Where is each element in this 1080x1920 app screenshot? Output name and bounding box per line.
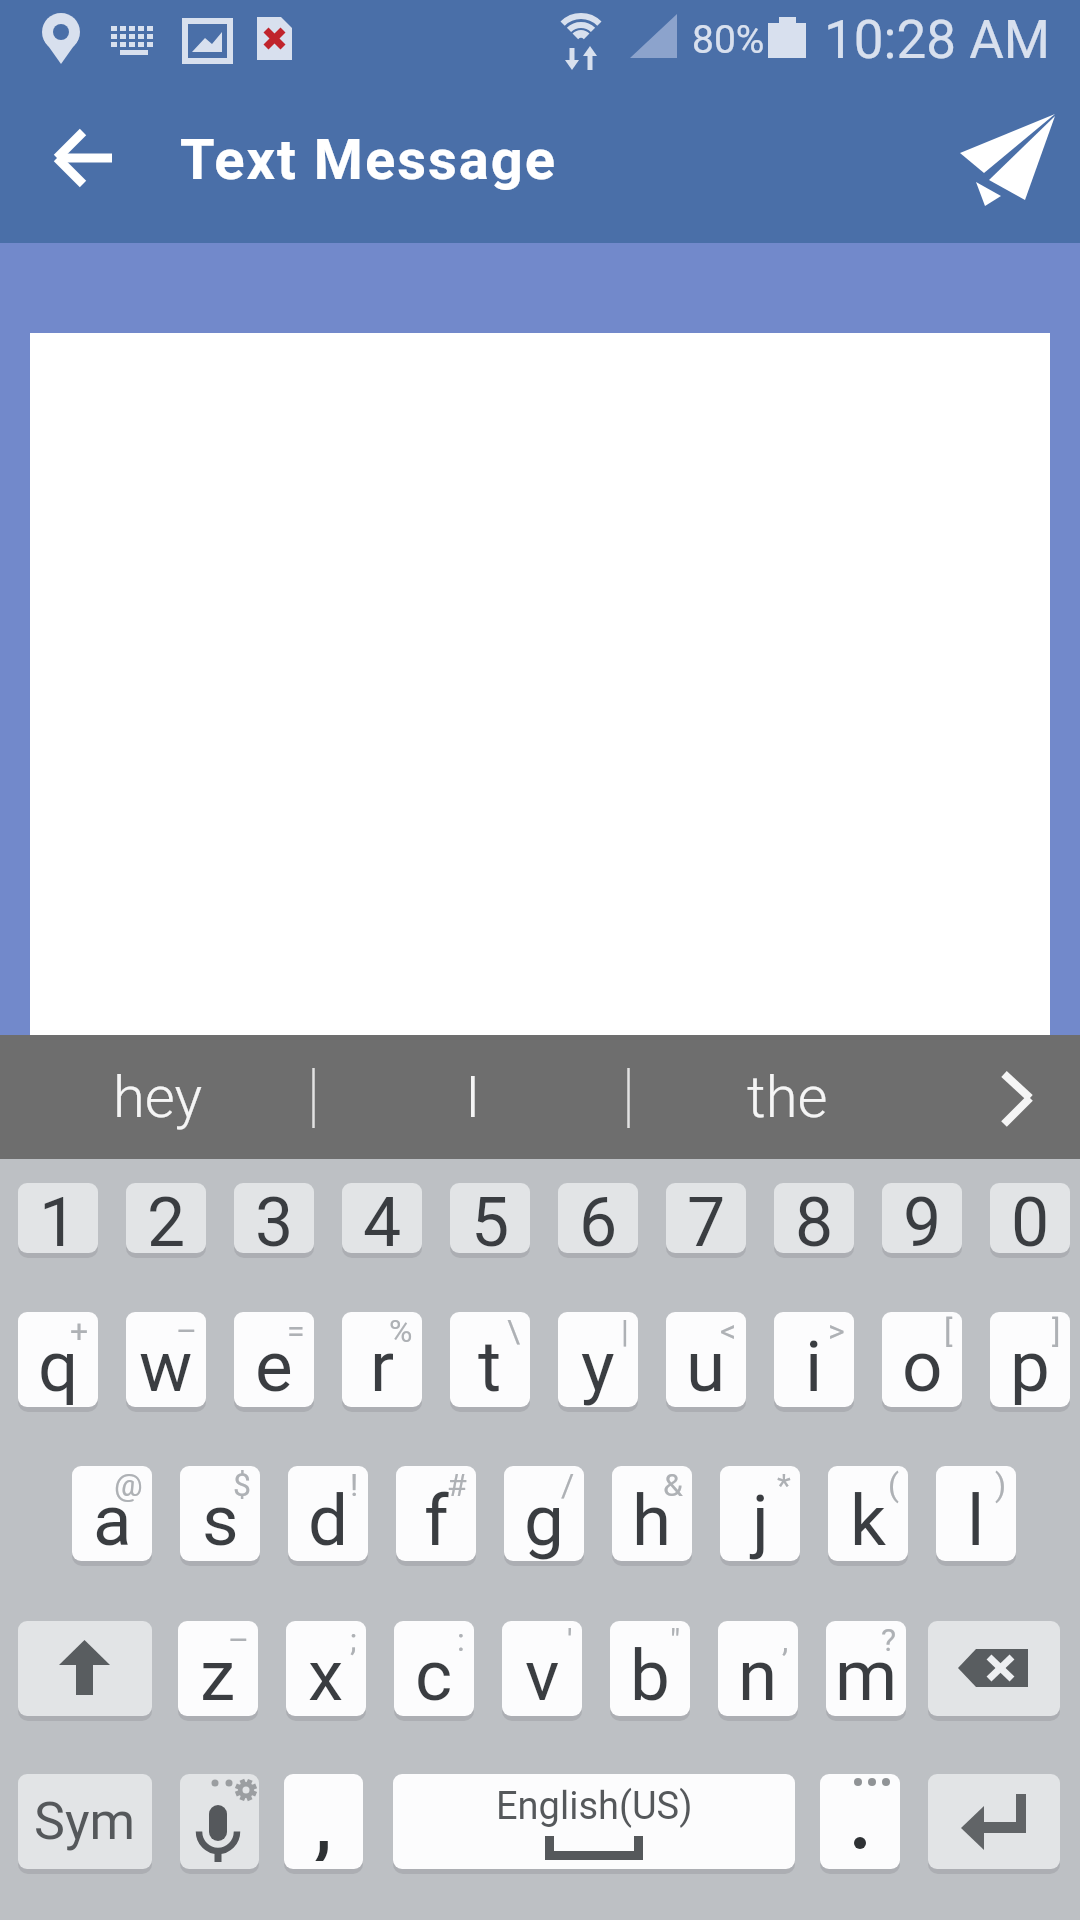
button[interactable]: 2 xyxy=(126,1183,206,1253)
button[interactable]: l xyxy=(936,1466,1016,1561)
button[interactable]: o xyxy=(882,1312,962,1407)
button[interactable]: r xyxy=(342,1312,422,1407)
button[interactable]: i xyxy=(774,1312,854,1407)
staticText: x xyxy=(308,1634,344,1717)
button[interactable]: 8 xyxy=(774,1183,854,1253)
staticText: l xyxy=(967,1479,985,1562)
staticText: : xyxy=(457,1621,465,1659)
button[interactable]: n xyxy=(718,1621,798,1716)
button[interactable]: q xyxy=(18,1312,98,1407)
staticText: 9 xyxy=(903,1183,942,1253)
button[interactable]: j xyxy=(720,1466,800,1561)
staticText: 6 xyxy=(579,1183,618,1253)
staticText: f xyxy=(424,1479,449,1562)
button[interactable]: c xyxy=(394,1621,474,1716)
button[interactable] xyxy=(928,1774,1060,1869)
staticText: # xyxy=(447,1466,467,1504)
staticText: o xyxy=(902,1325,943,1408)
button[interactable]: a xyxy=(72,1466,152,1561)
staticText: 2 xyxy=(147,1183,186,1253)
button[interactable]: 3 xyxy=(234,1183,314,1253)
button[interactable]: s xyxy=(180,1466,260,1561)
button[interactable]: m xyxy=(826,1621,906,1716)
staticText: 10:28 AM xyxy=(824,9,1050,71)
button[interactable]: u xyxy=(666,1312,746,1407)
staticText: I xyxy=(465,1063,481,1131)
staticText: j xyxy=(752,1479,769,1562)
staticText: ( xyxy=(888,1466,899,1504)
staticText: \ xyxy=(507,1312,521,1350)
button[interactable]: hey xyxy=(30,1040,285,1154)
staticText: Sym xyxy=(34,1791,136,1852)
button[interactable]: 6 xyxy=(558,1183,638,1253)
button[interactable]: 4 xyxy=(342,1183,422,1253)
staticText: ) xyxy=(995,1466,1007,1504)
button[interactable] xyxy=(945,100,1065,215)
staticText: i xyxy=(805,1325,823,1408)
button[interactable]: g xyxy=(504,1466,584,1561)
button[interactable]: b xyxy=(610,1621,690,1716)
button[interactable] xyxy=(35,115,125,205)
button[interactable]: 5 xyxy=(450,1183,530,1253)
staticText: p xyxy=(1010,1325,1050,1408)
button[interactable] xyxy=(975,1050,1065,1145)
staticText: v xyxy=(525,1634,560,1717)
button[interactable]: w xyxy=(126,1312,206,1407)
staticText: < xyxy=(720,1312,737,1350)
button[interactable]: 7 xyxy=(666,1183,746,1253)
staticText: g xyxy=(524,1479,564,1562)
staticText: ' xyxy=(567,1621,573,1659)
button[interactable]: , xyxy=(284,1774,363,1869)
staticText: k xyxy=(850,1479,886,1562)
staticText: ? xyxy=(881,1621,897,1659)
staticText: b xyxy=(630,1634,670,1717)
button[interactable]: English(US) xyxy=(393,1774,795,1869)
staticText: q xyxy=(38,1325,79,1408)
staticText: u xyxy=(686,1325,726,1408)
button[interactable] xyxy=(18,1621,152,1716)
staticText: y xyxy=(581,1325,615,1408)
staticText: ; xyxy=(350,1621,357,1659)
button[interactable] xyxy=(820,1774,900,1869)
staticText: $ xyxy=(233,1466,251,1504)
staticText: , xyxy=(782,1621,789,1659)
button[interactable]: 1 xyxy=(18,1183,98,1253)
staticText: @ xyxy=(114,1466,143,1504)
button[interactable]: v xyxy=(502,1621,582,1716)
staticText: + xyxy=(70,1312,89,1350)
button[interactable] xyxy=(180,1774,259,1869)
staticText: ! xyxy=(350,1466,359,1504)
button[interactable]: 0 xyxy=(990,1183,1070,1253)
staticText: 0 xyxy=(1011,1183,1050,1253)
staticText: " xyxy=(670,1621,681,1659)
button[interactable]: Sym xyxy=(18,1774,152,1869)
button[interactable]: p xyxy=(990,1312,1070,1407)
button[interactable]: I xyxy=(345,1040,600,1154)
button[interactable]: t xyxy=(450,1312,530,1407)
button[interactable]: d xyxy=(288,1466,368,1561)
staticText: d xyxy=(308,1479,349,1562)
staticText: e xyxy=(255,1325,293,1408)
button[interactable]: the xyxy=(660,1040,915,1154)
button[interactable]: x xyxy=(286,1621,366,1716)
button[interactable]: y xyxy=(558,1312,638,1407)
staticText: | xyxy=(621,1312,629,1350)
button[interactable]: z xyxy=(178,1621,258,1716)
staticText: [ xyxy=(944,1312,953,1350)
staticText: t xyxy=(478,1325,502,1408)
staticText: z xyxy=(200,1634,236,1717)
button[interactable]: f xyxy=(396,1466,476,1561)
staticText: s xyxy=(202,1479,239,1562)
staticText: h xyxy=(632,1479,672,1562)
button[interactable]: h xyxy=(612,1466,692,1561)
staticText: , xyxy=(314,1766,333,1861)
button[interactable]: e xyxy=(234,1312,314,1407)
staticText: the xyxy=(747,1063,828,1131)
button[interactable]: k xyxy=(828,1466,908,1561)
staticText: 3 xyxy=(255,1183,294,1253)
staticText: 4 xyxy=(363,1183,402,1253)
staticText: ] xyxy=(1052,1312,1061,1350)
button[interactable] xyxy=(928,1621,1060,1716)
button[interactable]: 9 xyxy=(882,1183,962,1253)
